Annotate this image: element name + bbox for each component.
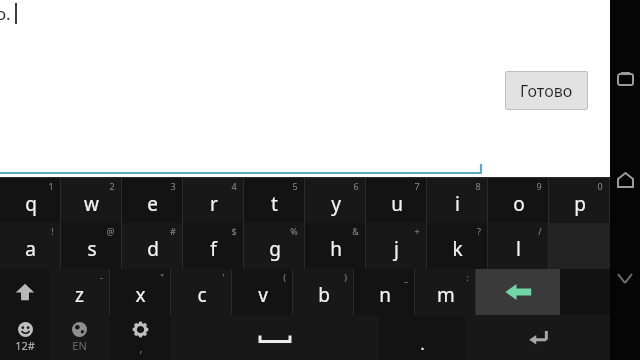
staticText: %	[290, 225, 298, 237]
button[interactable]: Symbols	[0, 315, 49, 360]
staticText: ,	[139, 339, 143, 355]
staticText: h	[330, 236, 342, 262]
staticText: _	[404, 271, 408, 283]
staticText: 1	[48, 180, 54, 192]
staticText: -	[100, 271, 103, 283]
staticText: 5	[292, 180, 298, 192]
staticText: x	[135, 282, 146, 308]
staticText: 12#	[15, 338, 35, 353]
button[interactable]: z	[49, 269, 110, 315]
button[interactable]: u	[366, 178, 427, 223]
staticText: (	[283, 271, 286, 283]
staticText: "	[160, 271, 164, 283]
button[interactable]: .	[379, 315, 465, 360]
staticText: $	[231, 225, 237, 237]
staticText: r	[210, 191, 218, 217]
staticText: :	[466, 271, 469, 283]
button[interactable]: Enter	[465, 315, 610, 360]
staticText: o	[513, 191, 525, 217]
button[interactable]: x	[110, 269, 171, 315]
button[interactable]: j	[366, 223, 427, 269]
button[interactable]: p	[549, 178, 610, 223]
button[interactable]: Shift	[0, 269, 49, 315]
staticText: p	[574, 191, 586, 217]
staticText: n	[379, 282, 391, 308]
staticText: j	[394, 236, 399, 262]
button[interactable]: n	[354, 269, 415, 315]
staticText: u	[391, 191, 403, 217]
staticText: .	[420, 332, 425, 355]
button[interactable]: Settings	[110, 315, 171, 360]
button[interactable]: h	[305, 223, 366, 269]
staticText: 7	[414, 180, 420, 192]
staticText: 3	[170, 180, 176, 192]
button[interactable]: r	[183, 178, 244, 223]
button[interactable]: v	[232, 269, 293, 315]
button[interactable]: Recent apps	[610, 62, 640, 94]
staticText: +	[414, 225, 420, 237]
staticText: w	[84, 191, 99, 217]
button[interactable]: i	[427, 178, 488, 223]
button[interactable]: g	[244, 223, 305, 269]
button[interactable]: b	[293, 269, 354, 315]
staticText: EN	[72, 338, 87, 353]
staticText: m	[437, 282, 455, 308]
button[interactable]: e	[122, 178, 183, 223]
staticText: 9	[536, 180, 542, 192]
button[interactable]: s	[61, 223, 122, 269]
button[interactable]: Change language	[49, 315, 110, 360]
staticText: &	[352, 225, 359, 237]
staticText: #	[170, 225, 176, 237]
button[interactable]: y	[305, 178, 366, 223]
button[interactable]: k	[427, 223, 488, 269]
staticText: 6	[353, 180, 359, 192]
button[interactable]: m	[415, 269, 476, 315]
button[interactable]: c	[171, 269, 232, 315]
staticText: @	[106, 225, 115, 237]
staticText: 2	[109, 180, 115, 192]
staticText: '	[222, 271, 225, 283]
staticText: )	[344, 271, 347, 283]
staticText: !	[51, 225, 54, 237]
staticText: e	[147, 191, 158, 217]
button[interactable]: o	[488, 178, 549, 223]
button[interactable]: Home	[610, 164, 640, 196]
staticText: 4	[231, 180, 237, 192]
staticText: ?	[477, 225, 481, 237]
staticText: s	[87, 236, 97, 262]
staticText: t	[271, 191, 278, 217]
button[interactable]: Backspace	[476, 269, 560, 315]
button[interactable]: Готово	[505, 71, 588, 110]
staticText: 8	[475, 180, 481, 192]
button[interactable]: w	[61, 178, 122, 223]
staticText: о.	[0, 2, 11, 25]
staticText: z	[75, 282, 84, 308]
staticText: y	[331, 191, 341, 217]
staticText: g	[269, 236, 281, 262]
button[interactable]: t	[244, 178, 305, 223]
staticText: a	[25, 236, 36, 262]
staticText: /	[538, 225, 542, 237]
staticText: k	[452, 236, 463, 262]
staticText: 0	[597, 180, 603, 192]
button[interactable]: q	[0, 178, 61, 223]
staticText: v	[258, 282, 268, 308]
staticText: b	[318, 282, 330, 308]
staticText: d	[147, 236, 159, 262]
staticText: q	[25, 191, 37, 217]
button[interactable]: d	[122, 223, 183, 269]
staticText: f	[210, 236, 217, 262]
staticText: l	[516, 236, 521, 262]
button[interactable]: Hide keyboard	[610, 262, 640, 294]
staticText: Готово	[520, 80, 573, 102]
button[interactable]: Space	[171, 315, 379, 360]
button[interactable]: l	[488, 223, 549, 269]
button[interactable]: a	[0, 223, 61, 269]
button[interactable]: f	[183, 223, 244, 269]
staticText: i	[455, 191, 460, 217]
staticText: c	[197, 282, 207, 308]
